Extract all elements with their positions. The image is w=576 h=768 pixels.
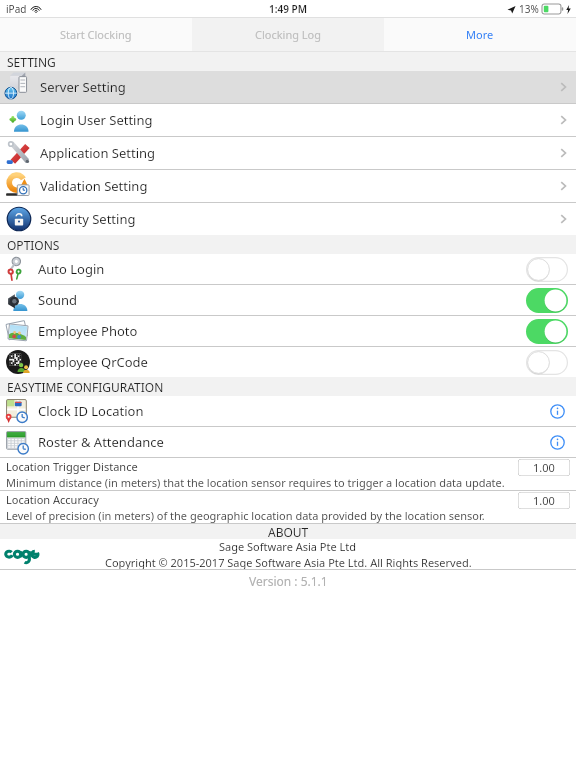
button[interactable]: 1.00: [518, 492, 570, 509]
staticText: Server Setting: [40, 78, 126, 96]
staticText: Application Setting: [40, 144, 156, 162]
staticText: Copyright © 2015-2017 Sage Software Asia…: [105, 555, 472, 569]
button[interactable]: Off: [526, 350, 568, 375]
staticText: Employee Photo: [38, 322, 138, 340]
staticText: Employee QrCode: [38, 353, 148, 371]
button[interactable]: Information about Clock ID Location: [548, 402, 566, 420]
button[interactable]: Auto Login: [0, 254, 576, 284]
button[interactable]: Employee QrCode: [0, 347, 576, 377]
staticText: Security Setting: [40, 210, 136, 228]
staticText: Level of precision (in meters) of the ge…: [6, 508, 485, 523]
staticText: Location Accuracy: [6, 492, 99, 507]
button[interactable]: Sound: [0, 285, 576, 315]
button[interactable]: Off: [526, 257, 568, 282]
staticText: 1.00: [533, 493, 555, 508]
button[interactable]: On: [526, 319, 568, 344]
staticText: 13%: [519, 2, 539, 16]
staticText: Auto Login: [38, 260, 105, 278]
staticText: Login User Setting: [40, 111, 153, 129]
staticText: Sound: [38, 291, 78, 309]
button[interactable]: Clock ID Location: [0, 396, 576, 426]
button[interactable]: Employee Photo: [0, 316, 576, 346]
button[interactable]: Server Setting: [0, 71, 576, 103]
staticText: Validation Setting: [40, 177, 148, 195]
staticText: SETTING: [7, 54, 56, 70]
staticText: Start Clocking: [60, 27, 132, 42]
staticText: Sage Software Asia Pte Ltd: [219, 539, 357, 554]
staticText: iPad: [6, 2, 27, 16]
button[interactable]: 1.00: [518, 459, 570, 476]
staticText: OPTIONS: [7, 237, 60, 253]
button[interactable]: Roster & Attendance: [0, 427, 576, 457]
staticText: Version : 5.1.1: [249, 573, 328, 589]
staticText: Location Trigger Distance: [6, 459, 138, 474]
staticText: Minimum distance (in meters) that the lo…: [6, 475, 505, 490]
button[interactable]: Location Accuracy: [0, 491, 576, 523]
staticText: ABOUT: [268, 524, 309, 539]
staticText: 1.00: [533, 460, 555, 475]
staticText: Clocking Log: [255, 27, 322, 42]
staticText: Clock ID Location: [38, 402, 144, 420]
button[interactable]: Login User Setting: [0, 104, 576, 136]
button[interactable]: On: [526, 288, 568, 313]
staticText: 1:49 PM: [269, 2, 307, 16]
button[interactable]: Location Trigger Distance: [0, 458, 576, 490]
staticText: More: [466, 27, 494, 42]
button[interactable]: Start Clocking: [0, 18, 192, 51]
staticText: Roster & Attendance: [38, 433, 164, 451]
button[interactable]: Validation Setting: [0, 170, 576, 202]
button[interactable]: Application Setting: [0, 137, 576, 169]
button[interactable]: Information about Roster & Attendance: [548, 433, 566, 451]
button[interactable]: Clocking Log: [192, 18, 384, 51]
button[interactable]: Security Setting: [0, 203, 576, 235]
staticText: EASYTIME CONFIGURATION: [7, 379, 164, 395]
button[interactable]: More: [384, 18, 576, 51]
